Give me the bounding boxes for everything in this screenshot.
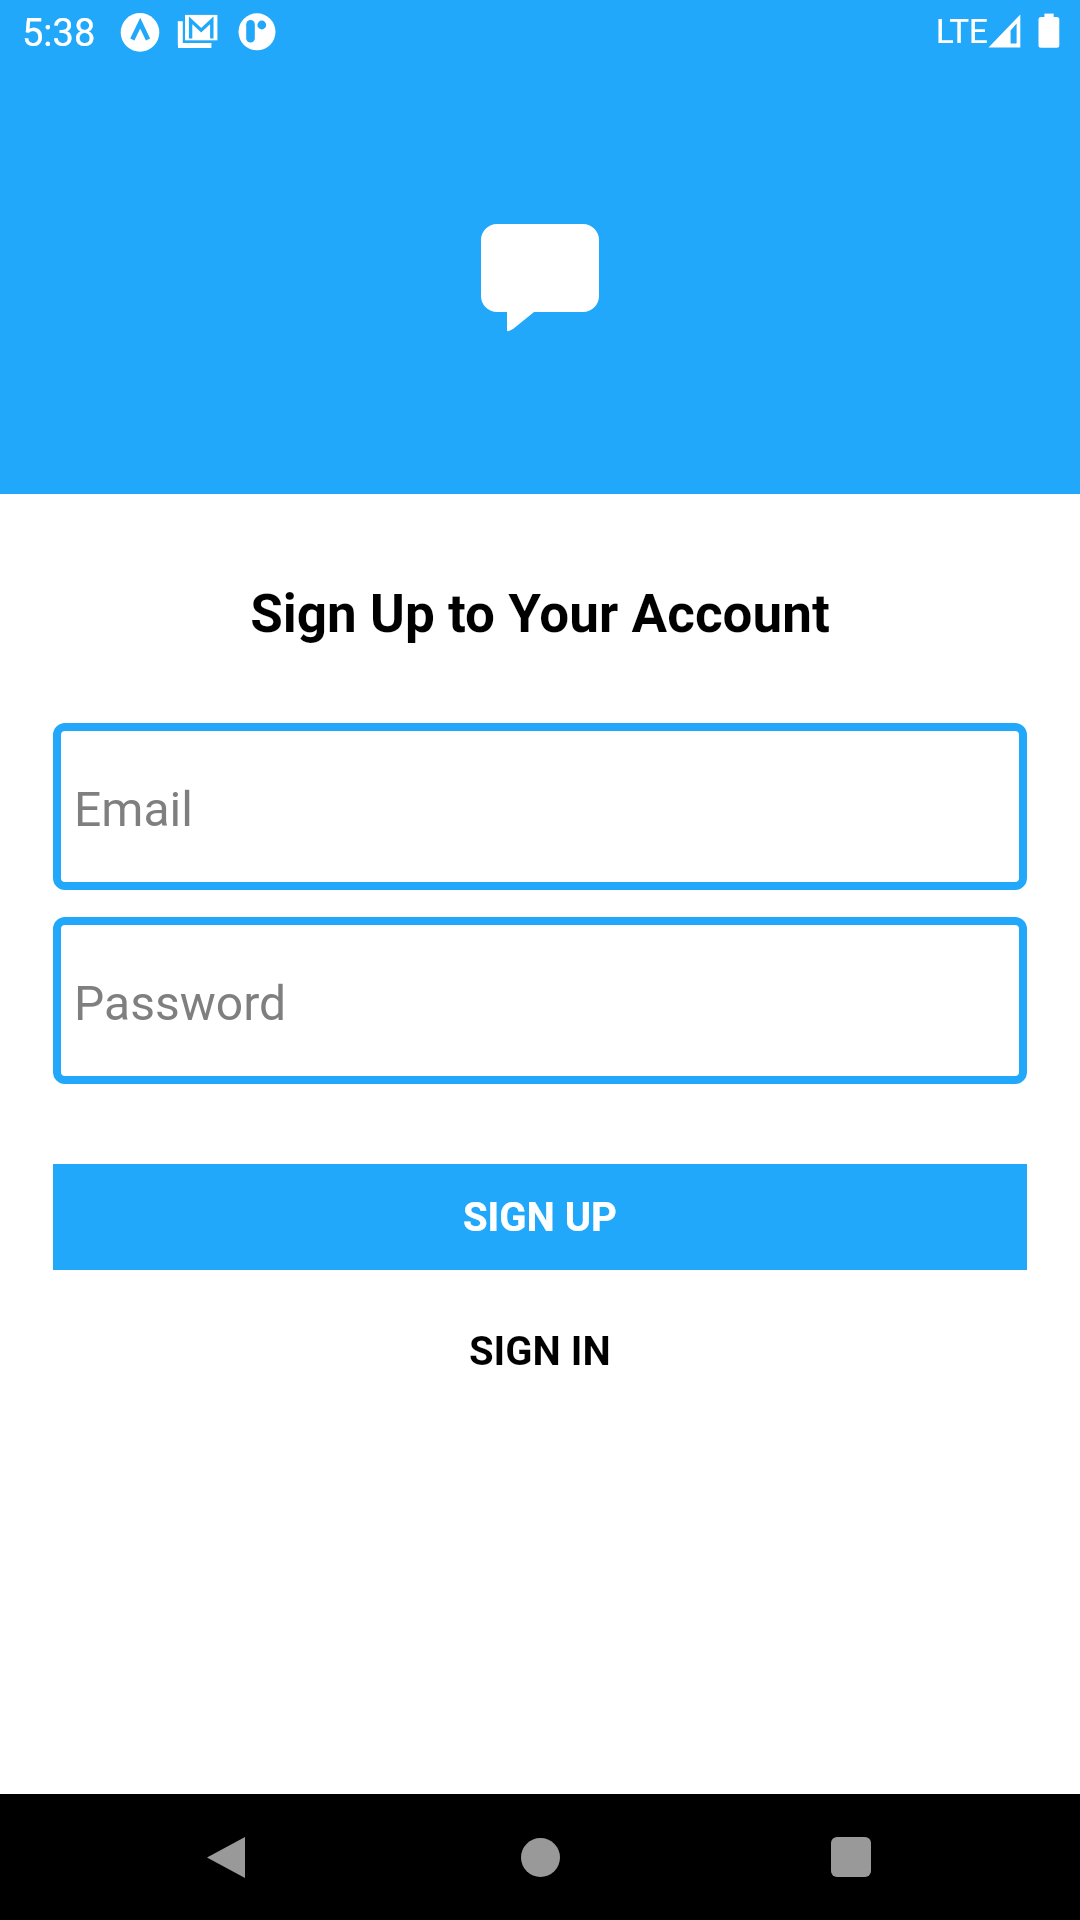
staticText: Email	[74, 781, 193, 837]
button[interactable]: Password	[53, 917, 1027, 1084]
staticText: LTE	[936, 12, 988, 51]
staticText: SIGN UP	[463, 1194, 617, 1241]
staticText: SIGN IN	[469, 1328, 611, 1375]
staticText: Password	[74, 975, 287, 1031]
button[interactable]: SIGN IN	[0, 1309, 1080, 1393]
staticText: 5:38	[22, 11, 96, 56]
button[interactable]: Home	[477, 1794, 603, 1920]
button[interactable]: Recent apps	[788, 1794, 914, 1920]
button[interactable]: Email	[53, 723, 1027, 890]
staticText: Sign Up to Your Account	[0, 583, 1080, 645]
button[interactable]: Back	[163, 1794, 289, 1920]
button[interactable]: SIGN UP	[53, 1164, 1027, 1270]
